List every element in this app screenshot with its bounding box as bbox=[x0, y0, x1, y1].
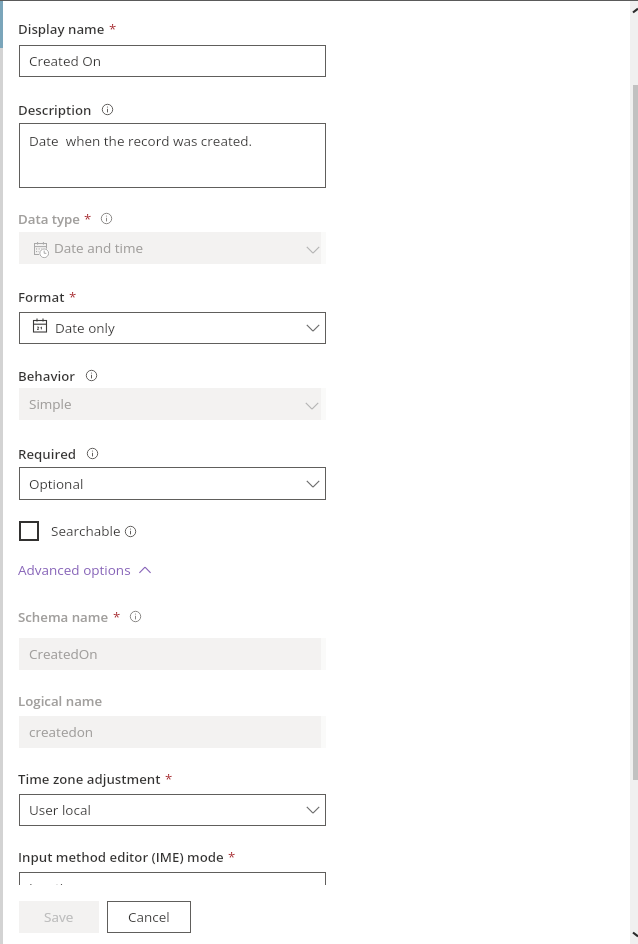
button[interactable]: Advanced options bbox=[18, 561, 153, 579]
staticText: Description bbox=[18, 101, 92, 119]
button[interactable]: CreatedOn bbox=[19, 638, 326, 670]
staticText: * bbox=[69, 288, 77, 306]
staticText: createdon bbox=[29, 723, 94, 741]
staticText: * bbox=[109, 20, 117, 38]
staticText: Schema name bbox=[18, 608, 109, 626]
button[interactable]: Searchable bbox=[19, 521, 121, 541]
button[interactable]: Simple bbox=[19, 388, 326, 420]
staticText: * bbox=[165, 770, 173, 788]
staticText: * bbox=[228, 848, 236, 866]
staticText: Time zone adjustment bbox=[18, 770, 161, 788]
staticText: Created On bbox=[29, 52, 102, 70]
staticText: Simple bbox=[29, 395, 72, 413]
staticText: Save bbox=[44, 908, 74, 926]
staticText: Behavior bbox=[18, 367, 76, 385]
staticText: Display name bbox=[18, 20, 105, 38]
button[interactable]: Save bbox=[19, 901, 99, 933]
staticText: Date only bbox=[55, 319, 115, 337]
button[interactable]: createdon bbox=[19, 716, 326, 748]
button[interactable]: Cancel bbox=[107, 901, 191, 933]
button[interactable]: Vertical scrollbar bbox=[630, 0, 638, 944]
staticText: Cancel bbox=[128, 908, 170, 926]
button[interactable]: Optional bbox=[19, 467, 326, 500]
staticText: Inactive bbox=[29, 879, 78, 897]
staticText: * bbox=[84, 210, 92, 228]
staticText: Searchable bbox=[51, 522, 121, 540]
staticText: Optional bbox=[29, 475, 84, 493]
staticText: User local bbox=[29, 801, 91, 819]
staticText: Date when the record was created. bbox=[29, 132, 253, 150]
staticText: Advanced options bbox=[18, 561, 131, 579]
staticText: CreatedOn bbox=[29, 645, 98, 663]
button[interactable]: Inactive bbox=[19, 872, 326, 904]
staticText: * bbox=[113, 608, 121, 626]
button[interactable]: User local bbox=[19, 794, 326, 826]
staticText: Data type bbox=[18, 210, 80, 228]
button[interactable]: Date only bbox=[19, 312, 326, 344]
button[interactable]: Date when the record was created. bbox=[19, 123, 326, 188]
staticText: Format bbox=[18, 288, 65, 306]
staticText: Logical name bbox=[18, 692, 103, 710]
staticText: Required bbox=[18, 445, 77, 463]
button[interactable]: Date and time bbox=[19, 232, 326, 264]
staticText: Input method editor (IME) mode bbox=[18, 848, 224, 866]
staticText: Date and time bbox=[54, 239, 144, 257]
button[interactable]: Created On bbox=[19, 45, 326, 77]
